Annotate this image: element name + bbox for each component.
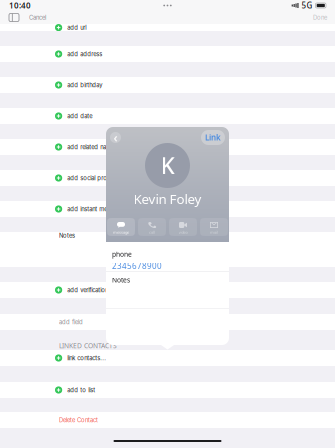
button[interactable]: call bbox=[138, 218, 166, 236]
button[interactable]: Notes bbox=[106, 271, 229, 308]
button[interactable]: message bbox=[107, 218, 135, 236]
button[interactable]: add field bbox=[0, 314, 335, 330]
staticText: Kevin Foley bbox=[133, 190, 201, 208]
staticText: video bbox=[178, 229, 187, 235]
staticText: add verification bbox=[67, 286, 108, 294]
button[interactable]: add related name bbox=[0, 139, 335, 155]
staticText: add social profile bbox=[67, 174, 114, 182]
button[interactable]: Link bbox=[201, 130, 225, 145]
button[interactable]: add instant message bbox=[0, 201, 335, 217]
staticText: Notes bbox=[112, 275, 130, 284]
staticText: Notes bbox=[59, 232, 75, 239]
staticText: add url bbox=[67, 24, 86, 31]
button[interactable]: phone bbox=[106, 242, 229, 271]
staticText: Cancel bbox=[29, 14, 46, 21]
staticText: call bbox=[149, 229, 155, 235]
staticText: add address bbox=[67, 50, 102, 58]
staticText: 2345678900 bbox=[112, 261, 162, 271]
staticText: add date bbox=[67, 112, 92, 120]
button[interactable]: video bbox=[169, 218, 197, 236]
staticText: 10:40 bbox=[9, 0, 31, 11]
staticText: K bbox=[160, 150, 174, 180]
button[interactable]: Back bbox=[110, 132, 121, 143]
button[interactable]: Show sidebar bbox=[8, 13, 20, 22]
staticText: 5G bbox=[301, 0, 312, 11]
staticText: mail bbox=[210, 229, 218, 235]
staticText: add related name bbox=[67, 143, 114, 151]
button[interactable]: add birthday bbox=[0, 77, 335, 93]
staticText: phone bbox=[112, 250, 132, 259]
button[interactable]: Done bbox=[313, 14, 327, 21]
button[interactable]: add social profile bbox=[0, 170, 335, 186]
staticText: Delete Contact bbox=[59, 416, 98, 424]
button[interactable]: Delete Contact bbox=[0, 412, 335, 428]
button[interactable]: link contacts... bbox=[0, 350, 335, 366]
staticText: message bbox=[113, 229, 129, 235]
staticText: Done bbox=[313, 14, 327, 21]
button[interactable]: add to list bbox=[0, 382, 335, 398]
staticText: add field bbox=[59, 318, 83, 326]
staticText: add instant message bbox=[67, 205, 123, 213]
button[interactable]: add url bbox=[0, 24, 335, 31]
button[interactable]: Notes bbox=[0, 232, 335, 267]
button[interactable]: Cancel bbox=[29, 14, 46, 21]
button[interactable]: add date bbox=[0, 108, 335, 124]
staticText: add birthday bbox=[67, 81, 102, 89]
staticText: link contacts... bbox=[67, 354, 106, 362]
button[interactable]: add verification bbox=[0, 282, 335, 298]
staticText: ‹ bbox=[113, 129, 117, 145]
button[interactable]: add address bbox=[0, 46, 335, 62]
staticText: LINKED CONTACTS bbox=[59, 341, 117, 350]
button[interactable]: mail bbox=[200, 218, 228, 236]
staticText: add to list bbox=[67, 386, 95, 394]
staticText: Link bbox=[205, 132, 221, 143]
